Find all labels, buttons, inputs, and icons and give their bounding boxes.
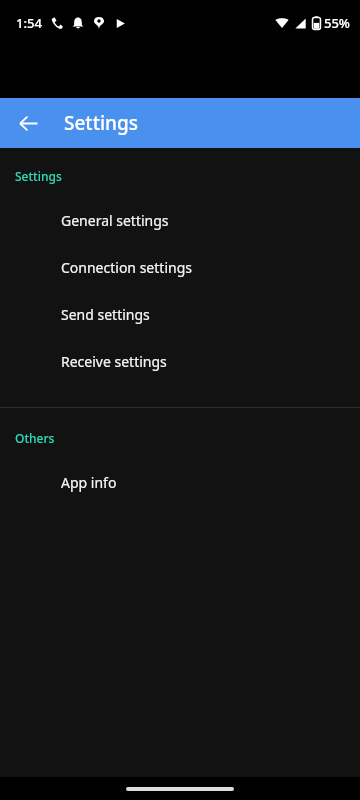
staticText: General settings xyxy=(61,211,169,230)
button[interactable]: Receive settings xyxy=(0,338,360,385)
staticText: Receive settings xyxy=(61,352,167,371)
staticText: 1:54 xyxy=(16,14,42,32)
staticText: Settings xyxy=(15,168,62,184)
button[interactable]: General settings xyxy=(0,197,360,244)
staticText: Others xyxy=(15,430,55,446)
button[interactable]: App info xyxy=(0,459,360,506)
staticText: Settings xyxy=(64,110,138,136)
button[interactable]: Back xyxy=(10,105,46,141)
staticText: Send settings xyxy=(61,305,150,324)
staticText: Connection settings xyxy=(61,258,192,277)
staticText: 55% xyxy=(324,14,350,32)
button[interactable]: Send settings xyxy=(0,291,360,338)
staticText: App info xyxy=(61,473,117,492)
button[interactable]: Connection settings xyxy=(0,244,360,291)
